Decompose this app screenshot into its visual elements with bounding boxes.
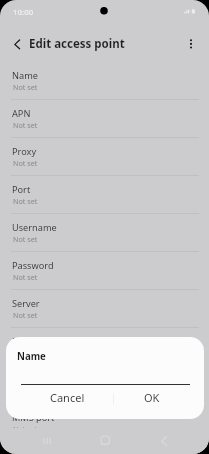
button[interactable]: Name bbox=[0, 62, 209, 100]
button[interactable]: MMS proxy bbox=[0, 366, 209, 404]
staticText: Username bbox=[12, 221, 57, 234]
staticText: Not set bbox=[13, 348, 38, 358]
staticText: Password bbox=[12, 259, 54, 272]
button[interactable]: Cancel bbox=[21, 388, 114, 406]
staticText: Port bbox=[12, 183, 31, 196]
staticText: Not set bbox=[13, 196, 38, 206]
button[interactable]: MMSC bbox=[0, 328, 209, 366]
staticText: Not set bbox=[13, 424, 38, 434]
staticText: Not set bbox=[13, 82, 38, 92]
staticText: MCC bbox=[12, 449, 32, 454]
button[interactable]: Back bbox=[5, 33, 27, 55]
button[interactable]: More options bbox=[181, 33, 203, 55]
staticText: Edit access point bbox=[29, 36, 125, 52]
staticText: Proxy bbox=[12, 145, 37, 158]
button[interactable]: Port bbox=[0, 176, 209, 214]
staticText: Not set bbox=[13, 234, 38, 244]
staticText: Not set bbox=[13, 272, 38, 282]
staticText: MMS proxy bbox=[12, 373, 61, 386]
button[interactable]: Proxy bbox=[0, 138, 209, 176]
staticText: Not set bbox=[13, 120, 38, 130]
button[interactable]: MCC bbox=[0, 442, 209, 454]
staticText: Name bbox=[12, 69, 38, 82]
staticText: Server bbox=[12, 297, 40, 310]
button[interactable]: Server bbox=[0, 290, 209, 328]
button[interactable]: OK bbox=[114, 388, 189, 406]
staticText: APN bbox=[12, 107, 31, 120]
button[interactable]: APN bbox=[0, 100, 209, 138]
button[interactable]: Password bbox=[0, 252, 209, 290]
button[interactable]: Username bbox=[0, 214, 209, 252]
staticText: Not set bbox=[13, 158, 38, 168]
button[interactable]: MMS port bbox=[0, 404, 209, 442]
staticText: OK bbox=[144, 390, 160, 405]
staticText: Cancel bbox=[50, 390, 85, 405]
staticText: Not set bbox=[13, 310, 38, 320]
staticText: MMS port bbox=[12, 411, 55, 424]
staticText: Name bbox=[17, 350, 46, 363]
staticText: 10:00 bbox=[13, 7, 34, 18]
staticText: MMSC bbox=[12, 335, 40, 348]
